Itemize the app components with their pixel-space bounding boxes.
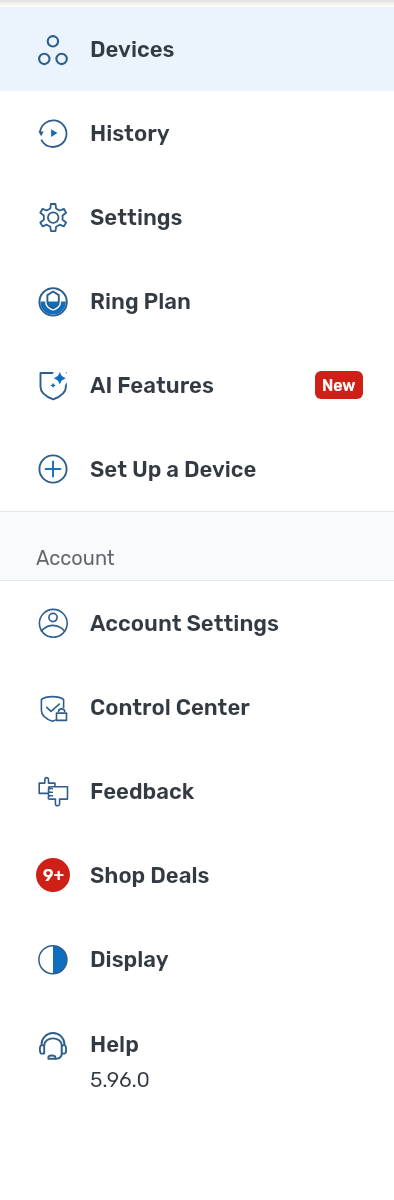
staticText: AI Features — [90, 372, 214, 398]
button[interactable]: Display — [0, 917, 394, 1001]
staticText: Account — [36, 546, 115, 570]
button[interactable]: Ring Plan — [0, 259, 394, 343]
staticText: New — [322, 376, 356, 395]
staticText: Ring Plan — [90, 288, 191, 314]
button[interactable]: Control Center — [0, 665, 394, 749]
button[interactable]: 9+ — [0, 833, 394, 917]
staticText: Settings — [90, 204, 183, 230]
button[interactable]: Devices — [0, 7, 394, 91]
staticText: Display — [90, 946, 169, 972]
button[interactable]: Set Up a Device — [0, 427, 394, 511]
staticText: Devices — [90, 36, 175, 62]
button[interactable]: Account Settings — [0, 581, 394, 665]
staticText: Set Up a Device — [90, 456, 257, 482]
staticText: 5.96.0 — [90, 1067, 150, 1092]
button[interactable]: Feedback — [0, 749, 394, 833]
staticText: 9+ — [43, 865, 64, 885]
staticText: History — [90, 120, 170, 146]
button[interactable]: Settings — [0, 175, 394, 259]
staticText: Account Settings — [90, 610, 279, 636]
button[interactable]: History — [0, 91, 394, 175]
staticText: Shop Deals — [90, 862, 210, 888]
button[interactable]: Help — [0, 1001, 394, 1085]
button[interactable]: AI Features — [0, 343, 394, 427]
staticText: Help — [90, 1031, 139, 1057]
staticText: Feedback — [90, 778, 195, 804]
staticText: Control Center — [90, 694, 250, 720]
